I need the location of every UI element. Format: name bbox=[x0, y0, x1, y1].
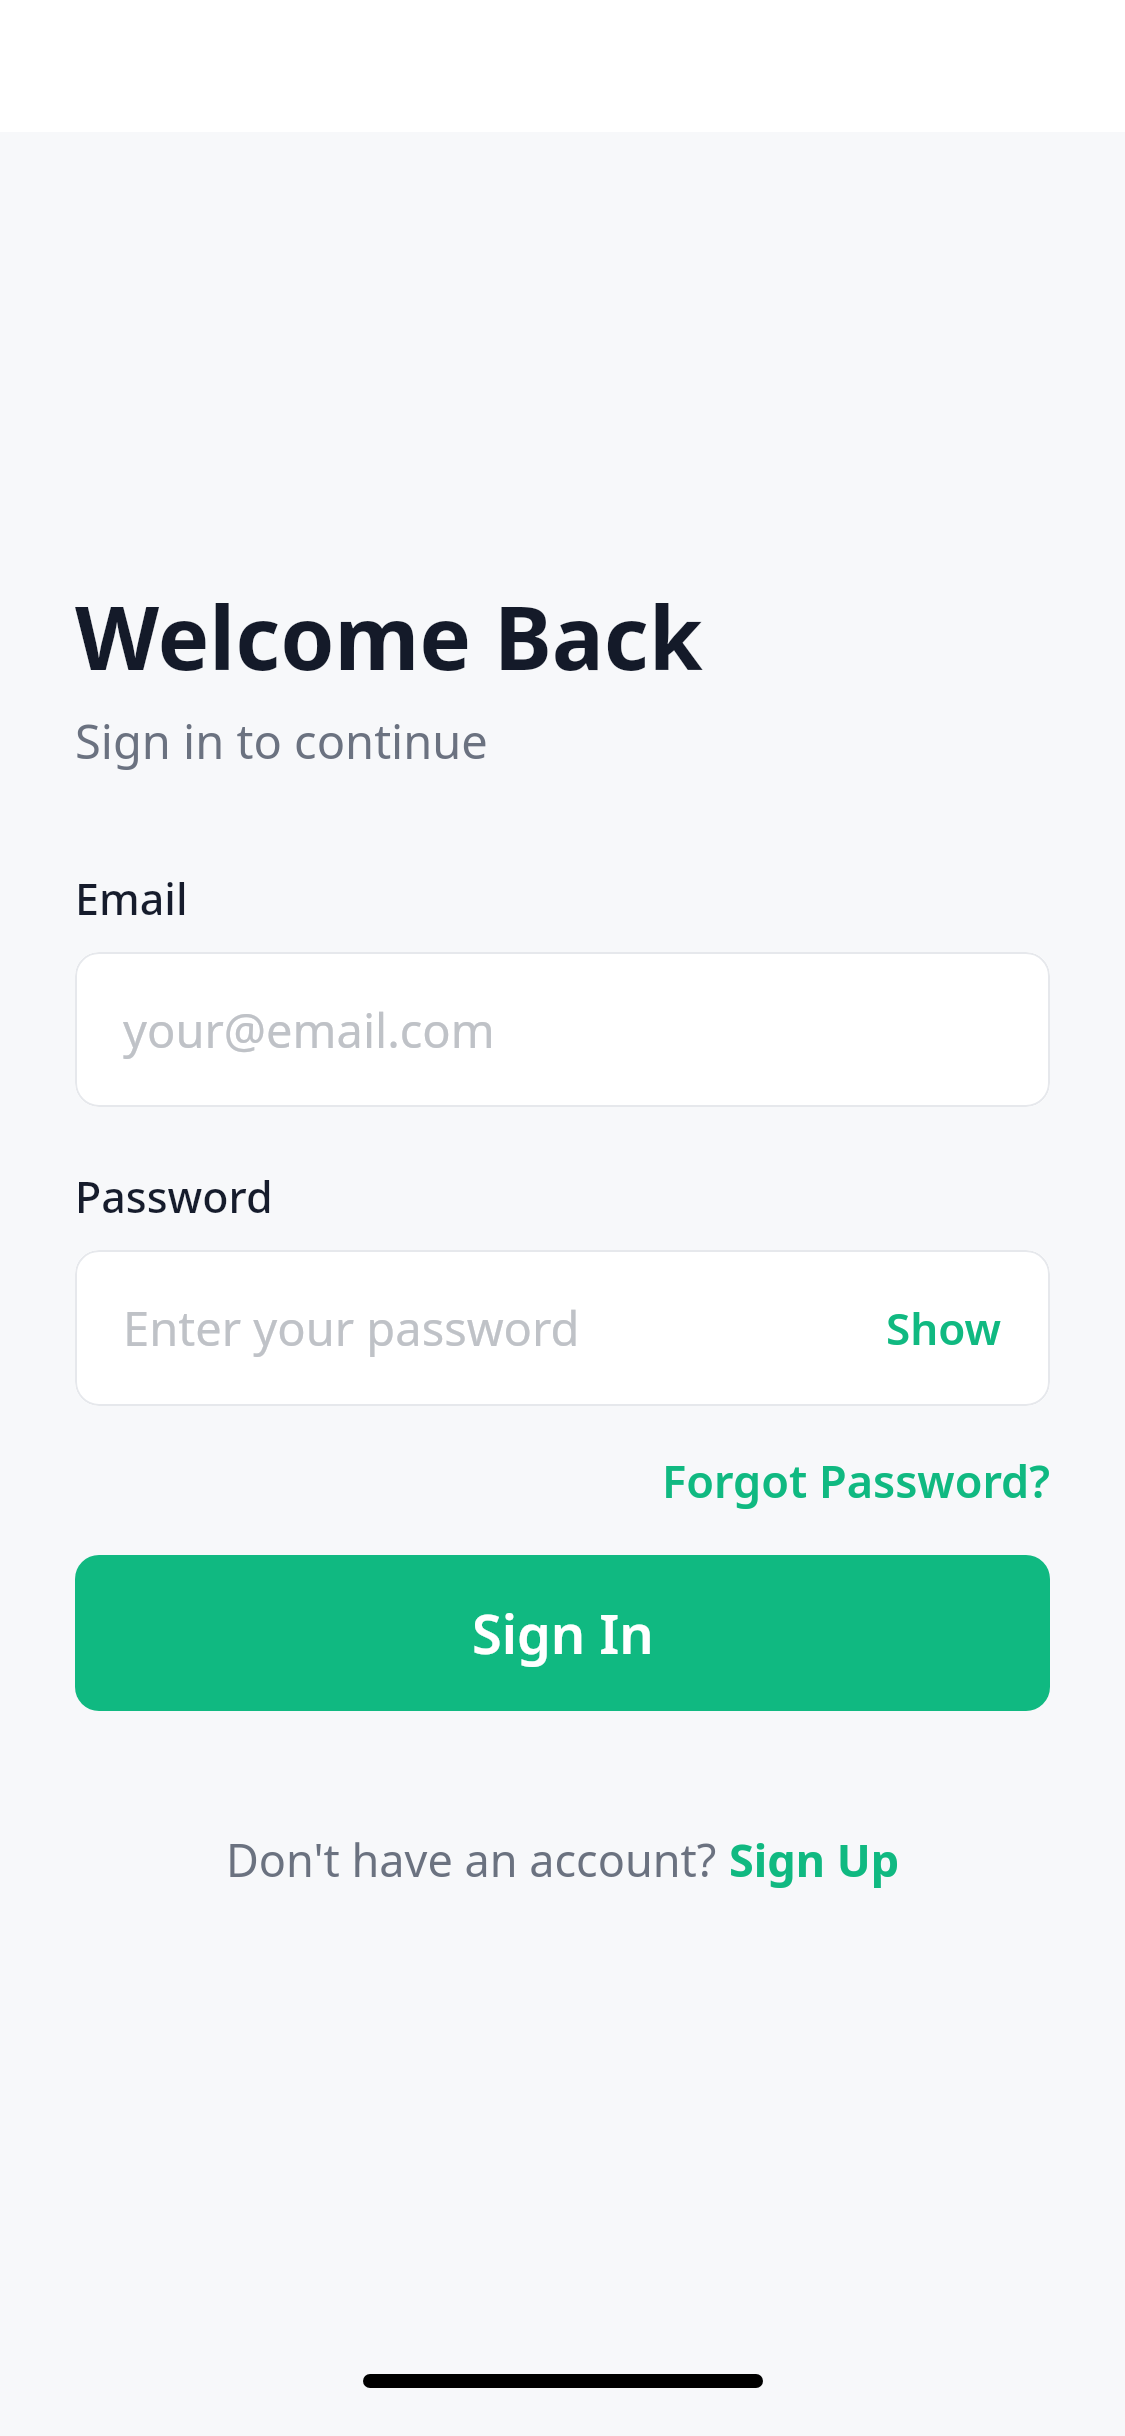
button[interactable]: Enter your password bbox=[75, 1250, 1050, 1406]
button[interactable]: Forgot Password? bbox=[662, 1450, 1050, 1511]
button[interactable]: your@email.com bbox=[75, 952, 1050, 1107]
staticText: Welcome Back bbox=[75, 577, 703, 695]
staticText: Forgot Password? bbox=[662, 1450, 1050, 1511]
staticText: Sign Up bbox=[729, 1829, 900, 1890]
staticText: Sign In bbox=[472, 1596, 654, 1670]
button[interactable]: Sign Up bbox=[729, 1829, 900, 1890]
staticText: your@email.com bbox=[123, 998, 495, 1062]
staticText: Enter your password bbox=[123, 1296, 886, 1360]
staticText: Don't have an account? bbox=[226, 1829, 729, 1890]
staticText: Email bbox=[75, 869, 188, 928]
staticText: Show bbox=[886, 1298, 1002, 1358]
staticText: Password bbox=[75, 1167, 273, 1226]
button[interactable]: Sign In bbox=[75, 1555, 1050, 1711]
staticText: Sign in to continue bbox=[75, 709, 488, 773]
button[interactable]: Show password bbox=[886, 1298, 1002, 1358]
